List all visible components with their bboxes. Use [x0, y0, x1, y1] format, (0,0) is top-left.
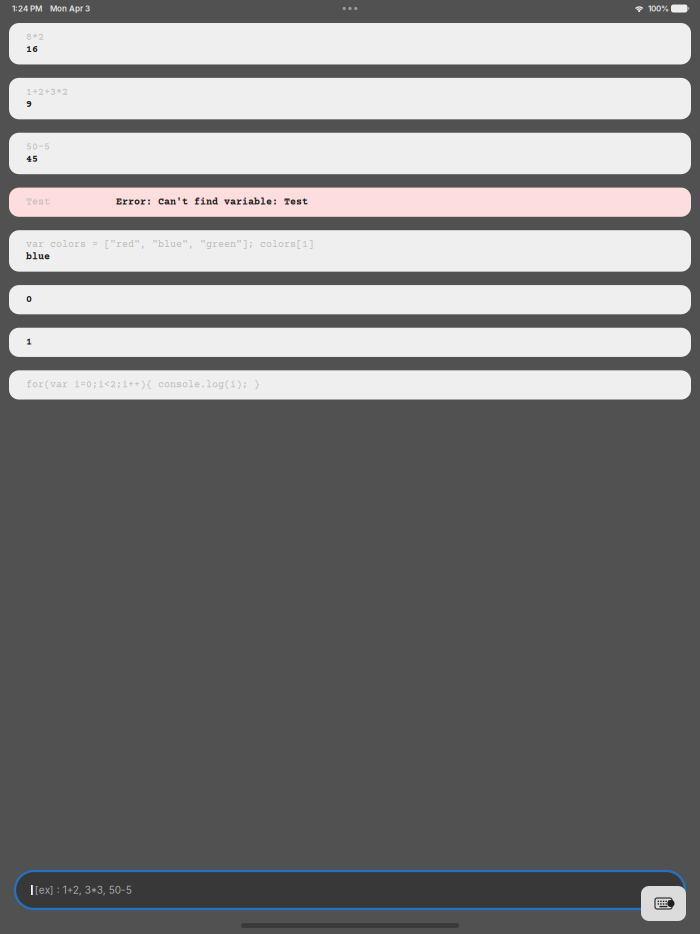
button[interactable]: 8*2: [9, 23, 691, 64]
staticText: 50-5: [26, 142, 50, 153]
staticText: 1:24 PM: [12, 4, 42, 13]
button[interactable]: 0: [9, 285, 691, 314]
button[interactable]: var colors = ["red", "blue", "green"]; c…: [9, 230, 691, 272]
staticText: Test: [26, 197, 50, 208]
button[interactable]: 1: [9, 328, 691, 357]
staticText: var colors = ["red", "blue", "green"]; c…: [26, 239, 314, 250]
staticText: 0: [26, 294, 32, 305]
staticText: 1: [26, 337, 32, 348]
staticText: 45: [26, 154, 38, 165]
staticText: blue: [26, 251, 50, 263]
staticText: Mon Apr 3: [50, 4, 90, 13]
staticText: 9: [26, 99, 32, 110]
staticText: for(var i=0;i<2;i++){ console.log(i); }: [26, 379, 260, 390]
staticText: Error: Can't find variable: Test: [116, 197, 308, 208]
button[interactable]: Dismiss keyboard: [641, 886, 686, 921]
staticText: 1+2+3*2: [26, 87, 68, 98]
button[interactable]: Test: [9, 188, 691, 217]
staticText: 100%: [648, 4, 669, 13]
staticText: [ex] : 1+2, 3*3, 50-5: [35, 884, 132, 896]
button[interactable]: 50-5: [9, 133, 691, 174]
button[interactable]: 1+2+3*2: [9, 78, 691, 119]
staticText: 8*2: [26, 32, 44, 43]
staticText: 16: [26, 44, 38, 55]
button[interactable]: for(var i=0;i<2;i++){ console.log(i); }: [9, 370, 691, 399]
